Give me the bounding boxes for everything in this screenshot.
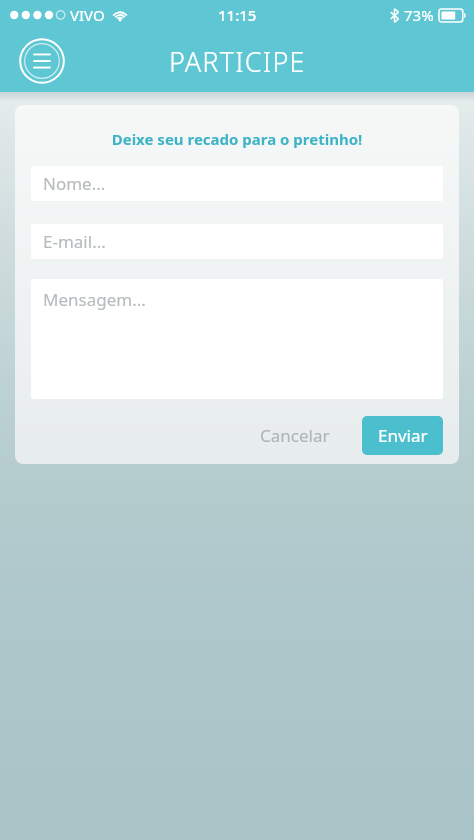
button[interactable]: Enviar — [362, 416, 443, 455]
button[interactable]: Mensagem... — [31, 279, 443, 399]
staticText: Deixe seu recado para o pretinho! — [15, 129, 459, 149]
button[interactable]: Menu — [19, 38, 65, 84]
staticText: Cancelar — [260, 424, 330, 447]
staticText: Mensagem... — [43, 288, 146, 311]
button[interactable]: Cancelar — [246, 414, 344, 457]
staticText: 73% — [404, 5, 434, 25]
staticText: VIVO — [70, 5, 105, 25]
staticText: Enviar — [378, 424, 428, 447]
staticText: PARTICIPE — [169, 43, 306, 80]
staticText: Nome... — [43, 172, 106, 195]
staticText: E-mail... — [43, 230, 106, 253]
button[interactable]: Nome... — [31, 166, 443, 201]
button[interactable]: E-mail... — [31, 224, 443, 259]
staticText: 11:15 — [218, 5, 257, 25]
